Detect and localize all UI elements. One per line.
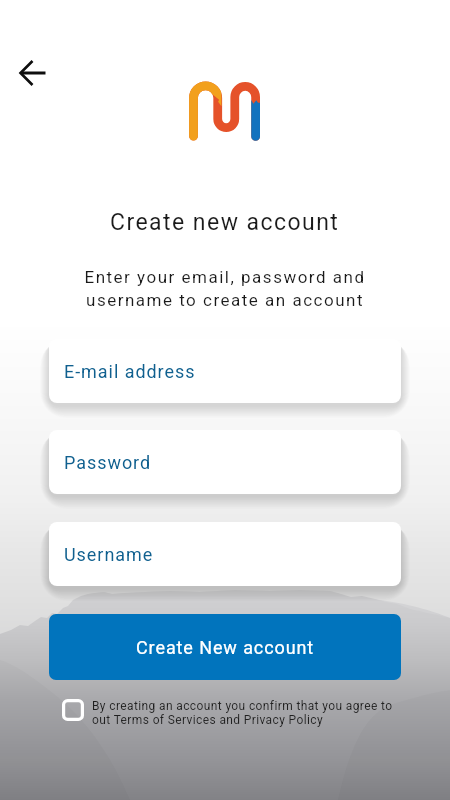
button[interactable]: Password xyxy=(49,430,401,494)
button[interactable]: Agree to terms xyxy=(62,699,84,721)
button[interactable]: Back xyxy=(11,51,55,95)
staticText: By creating an account you confirm that … xyxy=(92,699,393,727)
button[interactable]: Create New account xyxy=(49,614,401,680)
staticText: Password xyxy=(64,452,152,473)
button[interactable]: Username xyxy=(49,522,401,586)
staticText: Enter your email, password and username … xyxy=(84,267,366,310)
button[interactable]: E-mail address xyxy=(49,339,401,403)
staticText: E-mail address xyxy=(64,361,196,382)
staticText: Username xyxy=(64,544,154,565)
staticText: Create new account xyxy=(110,209,340,236)
staticText: Create New account xyxy=(136,637,315,658)
